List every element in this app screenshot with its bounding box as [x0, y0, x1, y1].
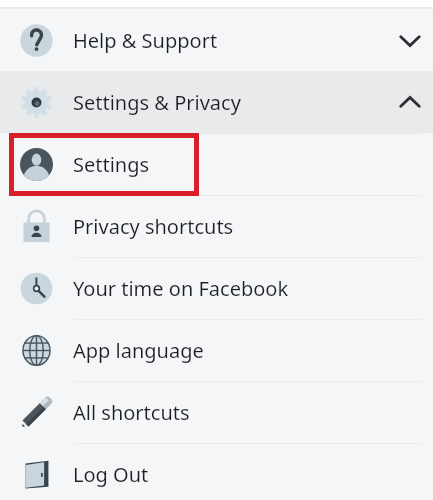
button[interactable]: Log Out: [0, 443, 433, 500]
other: Your time on Facebook: [20, 272, 53, 305]
button[interactable]: All shortcuts: [0, 381, 433, 443]
staticText: All shortcuts: [73, 399, 190, 426]
staticText: App language: [73, 337, 204, 364]
staticText: Privacy shortcuts: [73, 213, 234, 240]
other: Expand: [387, 10, 433, 71]
other: Privacy shortcuts: [20, 210, 53, 243]
staticText: Help & Support: [73, 27, 218, 54]
staticText: Log Out: [73, 461, 149, 488]
staticText: Settings & Privacy: [73, 89, 241, 116]
other: App language: [20, 334, 53, 367]
staticText: Your time on Facebook: [73, 275, 289, 302]
button[interactable]: Your time on Facebook: [0, 257, 433, 319]
button[interactable]: App language: [0, 319, 433, 381]
other: Help and Support: [20, 24, 53, 57]
button[interactable]: Privacy shortcuts: [0, 195, 433, 257]
other: Collapse: [387, 71, 433, 133]
button[interactable]: Settings and Privacy: [0, 71, 433, 133]
button[interactable]: Help and Support: [0, 10, 433, 71]
other: Settings and Privacy: [20, 86, 53, 119]
other: All shortcuts: [20, 396, 53, 429]
other: Settings: [20, 148, 53, 181]
button[interactable]: Settings: [0, 133, 433, 195]
other: Log Out: [21, 459, 52, 490]
staticText: Settings: [73, 151, 150, 178]
